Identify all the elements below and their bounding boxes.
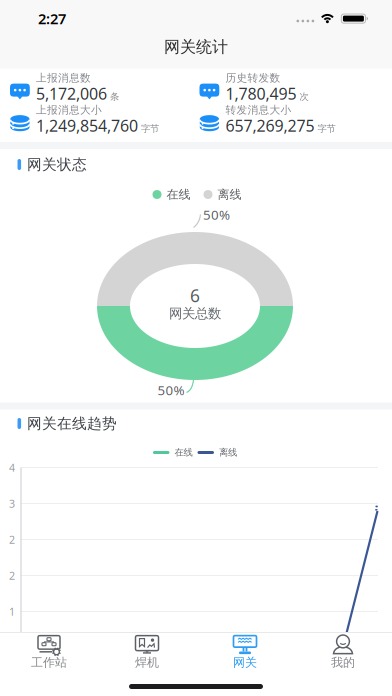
staticText: 网关统计 bbox=[164, 37, 228, 57]
staticText: 上报消息大小 bbox=[36, 103, 102, 116]
button[interactable]: 网关 bbox=[196, 627, 294, 673]
staticText: 1,249,854,760 bbox=[36, 115, 138, 136]
staticText: 转发消息大小 bbox=[225, 103, 291, 116]
staticText: 50% bbox=[157, 381, 184, 399]
staticText: 网关状态 bbox=[27, 155, 87, 173]
staticText: 条 bbox=[110, 91, 119, 102]
staticText: 4 bbox=[9, 460, 15, 475]
staticText: 2 bbox=[9, 532, 15, 547]
staticText: 上报消息数 bbox=[36, 71, 91, 84]
staticText: 在线 bbox=[166, 187, 190, 202]
staticText: 网关 bbox=[233, 655, 257, 670]
staticText: 在线 bbox=[174, 447, 192, 458]
staticText: 6 bbox=[190, 284, 200, 307]
staticText: 工作站 bbox=[31, 655, 67, 670]
staticText: 1,780,495 bbox=[225, 83, 296, 104]
staticText: 3 bbox=[9, 496, 15, 511]
staticText: 字节 bbox=[317, 123, 335, 134]
staticText: 网关总数 bbox=[169, 305, 221, 322]
staticText: 657,269,275 bbox=[225, 115, 314, 136]
staticText: 焊机 bbox=[135, 655, 159, 670]
staticText: 2:27 bbox=[38, 9, 66, 28]
button[interactable]: 焊机 bbox=[98, 627, 196, 673]
staticText: 2 bbox=[9, 568, 15, 583]
staticText: 字节 bbox=[141, 123, 159, 134]
staticText: 历史转发数 bbox=[225, 71, 280, 84]
staticText: 50% bbox=[203, 206, 230, 223]
staticText: 离线 bbox=[217, 187, 241, 202]
staticText: 次 bbox=[299, 91, 308, 102]
staticText: 离线 bbox=[219, 447, 237, 458]
staticText: 网关在线趋势 bbox=[27, 414, 117, 432]
staticText: 5,172,006 bbox=[36, 83, 107, 104]
staticText: 1 bbox=[9, 604, 15, 619]
button[interactable]: 工作站 bbox=[0, 627, 98, 673]
staticText: 我的 bbox=[331, 655, 355, 670]
button[interactable]: 我的 bbox=[294, 627, 392, 673]
